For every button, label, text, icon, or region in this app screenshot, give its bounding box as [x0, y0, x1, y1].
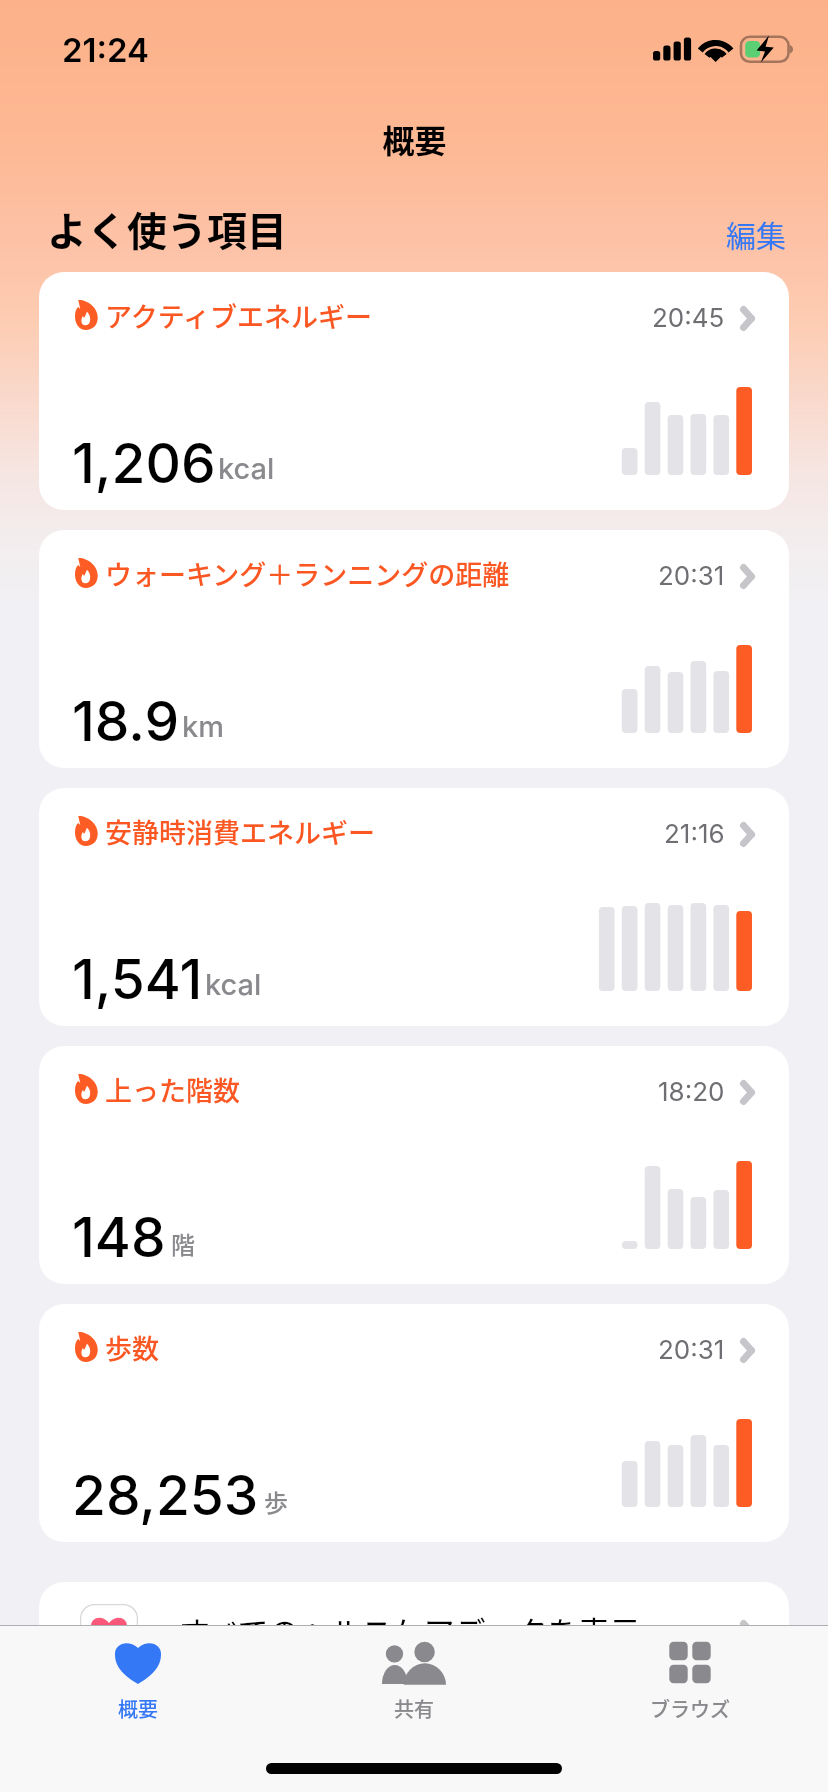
staticText: 21:16 [664, 818, 725, 849]
staticText: 1,206 [72, 430, 216, 497]
staticText: 編集 [726, 212, 786, 255]
button[interactable]: 安静時消費エネルギー [39, 788, 789, 1026]
button[interactable]: Summary [0, 1626, 276, 1708]
staticText: 上った階数 [105, 1070, 240, 1109]
staticText: km [182, 709, 224, 744]
button[interactable]: ウォーキング＋ランニングの距離 [39, 530, 789, 768]
staticText: 歩 [264, 1484, 288, 1519]
staticText: 21:24 [62, 30, 150, 70]
staticText: 20:31 [658, 1334, 725, 1365]
button[interactable]: アクティブエネルギー [39, 272, 789, 510]
staticText: 歩数 [105, 1328, 159, 1367]
staticText: 概要 [382, 116, 447, 162]
staticText: 階 [171, 1226, 195, 1261]
staticText: よく使う項目 [47, 200, 287, 258]
staticText: kcal [218, 451, 275, 486]
button[interactable]: 歩数 [39, 1304, 789, 1542]
staticText: 28,253 [72, 1462, 259, 1529]
staticText: 安静時消費エネルギー [105, 812, 375, 851]
staticText: 1,541 [72, 946, 203, 1013]
staticText: 18:20 [658, 1076, 725, 1107]
staticText: ブラウズ [650, 1694, 730, 1723]
staticText: 18.9 [72, 688, 180, 755]
staticText: kcal [205, 967, 262, 1002]
staticText: 20:31 [658, 560, 725, 591]
staticText: アクティブエネルギー [105, 296, 373, 335]
button[interactable]: すべてのヘルスケアデータを表示 [39, 1582, 789, 1722]
staticText: ウォーキング＋ランニングの距離 [105, 554, 510, 593]
staticText: 概要 [118, 1694, 158, 1723]
staticText: 148 [72, 1204, 166, 1271]
button[interactable]: Browse [552, 1626, 828, 1708]
staticText: 20:45 [652, 302, 725, 333]
staticText: 共有 [394, 1694, 434, 1723]
button[interactable]: 編集 [720, 206, 792, 261]
staticText: すべてのヘルスケアデータを表示 [179, 1608, 641, 1653]
button[interactable]: Sharing [276, 1626, 552, 1708]
button[interactable]: 上った階数 [39, 1046, 789, 1284]
